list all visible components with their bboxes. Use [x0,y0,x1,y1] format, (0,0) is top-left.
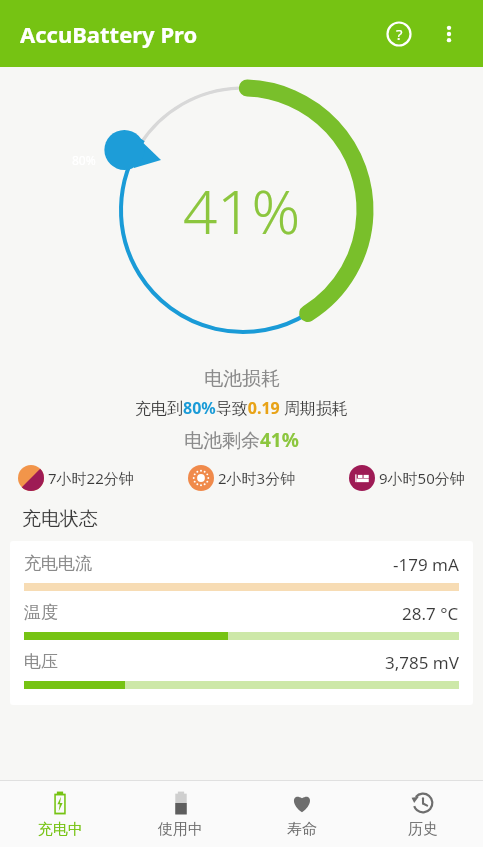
button[interactable]: 9小时50分钟 [349,465,465,491]
staticText: 28.7 °C [402,602,459,625]
staticText: -179 mA [393,553,459,576]
staticText: 41% [183,170,301,252]
button[interactable]: Help [379,14,419,54]
staticText: 9小时50分钟 [379,468,465,488]
button[interactable]: 7小时22分钟 [18,465,134,491]
staticText: 温度 [24,602,58,623]
staticText: 2小时3分钟 [218,468,296,488]
staticText: 电压 [24,651,58,672]
staticText: 充电到80%导致0.19 周期损耗 [135,397,348,419]
staticText: 7小时22分钟 [48,468,134,488]
button[interactable]: 充电电流 [24,553,459,591]
button[interactable]: More options [429,14,469,54]
button[interactable]: 充电中 [0,790,120,839]
button[interactable]: 电压 [24,651,459,689]
staticText: AccuBattery Pro [20,19,198,49]
staticText: ? [396,24,403,44]
staticText: 电池剩余41% [184,427,299,453]
staticText: 3,785 mV [385,651,459,674]
button[interactable]: 使用中 [120,790,241,839]
staticText: 充电电流 [24,553,92,574]
button[interactable]: 历史 [362,790,483,839]
staticText: 寿命 [287,820,317,839]
button[interactable]: 寿命 [241,790,362,839]
staticText: 充电中 [38,820,83,839]
button[interactable]: 2小时3分钟 [188,465,296,491]
staticText: 使用中 [158,820,203,839]
staticText: 历史 [408,820,438,839]
staticText: 80% [72,152,96,168]
staticText: 电池损耗 [204,367,280,391]
staticText: 充电状态 [22,507,98,531]
button[interactable]: 温度 [24,602,459,640]
